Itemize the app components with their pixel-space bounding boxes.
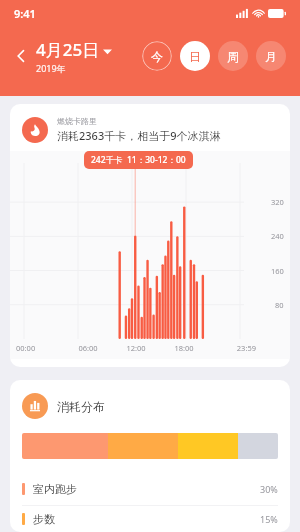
staticText: 30% — [260, 483, 278, 495]
staticText: 日 — [189, 49, 201, 64]
button[interactable]: 步数 — [10, 506, 290, 532]
staticText: 室内跑步 — [33, 482, 77, 496]
staticText: 2019年 — [36, 62, 66, 74]
staticText: 步数 — [33, 512, 55, 526]
button[interactable]: 燃烧卡路里 — [10, 104, 290, 367]
button[interactable]: 今 — [142, 41, 172, 71]
staticText: 242千卡 11：30-12：00 — [91, 154, 186, 166]
staticText: 周 — [227, 49, 239, 64]
staticText: 消耗分布 — [57, 399, 105, 414]
button[interactable]: 日 — [180, 41, 210, 71]
button[interactable]: 室内跑步 — [10, 473, 290, 506]
staticText: 今 — [151, 49, 163, 64]
staticText: 月 — [265, 49, 277, 64]
button[interactable]: 消耗分布 — [10, 380, 290, 532]
staticText: 15% — [260, 513, 278, 525]
staticText: 消耗2363千卡，相当于9个冰淇淋 — [57, 128, 221, 143]
staticText: 80 — [275, 300, 284, 310]
staticText: 12:00 — [112, 343, 160, 353]
staticText: 06:00 — [64, 343, 112, 353]
staticText: 160 — [271, 266, 284, 276]
staticText: 320 — [271, 197, 284, 207]
button[interactable]: 月 — [256, 41, 286, 71]
staticText: 燃烧卡路里 — [57, 116, 97, 126]
button[interactable]: Back — [10, 45, 32, 67]
staticText: 4月25日 — [36, 38, 100, 61]
staticText: 9:41 — [14, 6, 36, 21]
button[interactable]: 4月25日 — [36, 38, 116, 74]
staticText: 00:00 — [16, 343, 64, 353]
staticText: 23:59 — [208, 343, 256, 353]
button[interactable]: 周 — [218, 41, 248, 71]
staticText: 240 — [271, 231, 284, 241]
staticText: 18:00 — [160, 343, 208, 353]
